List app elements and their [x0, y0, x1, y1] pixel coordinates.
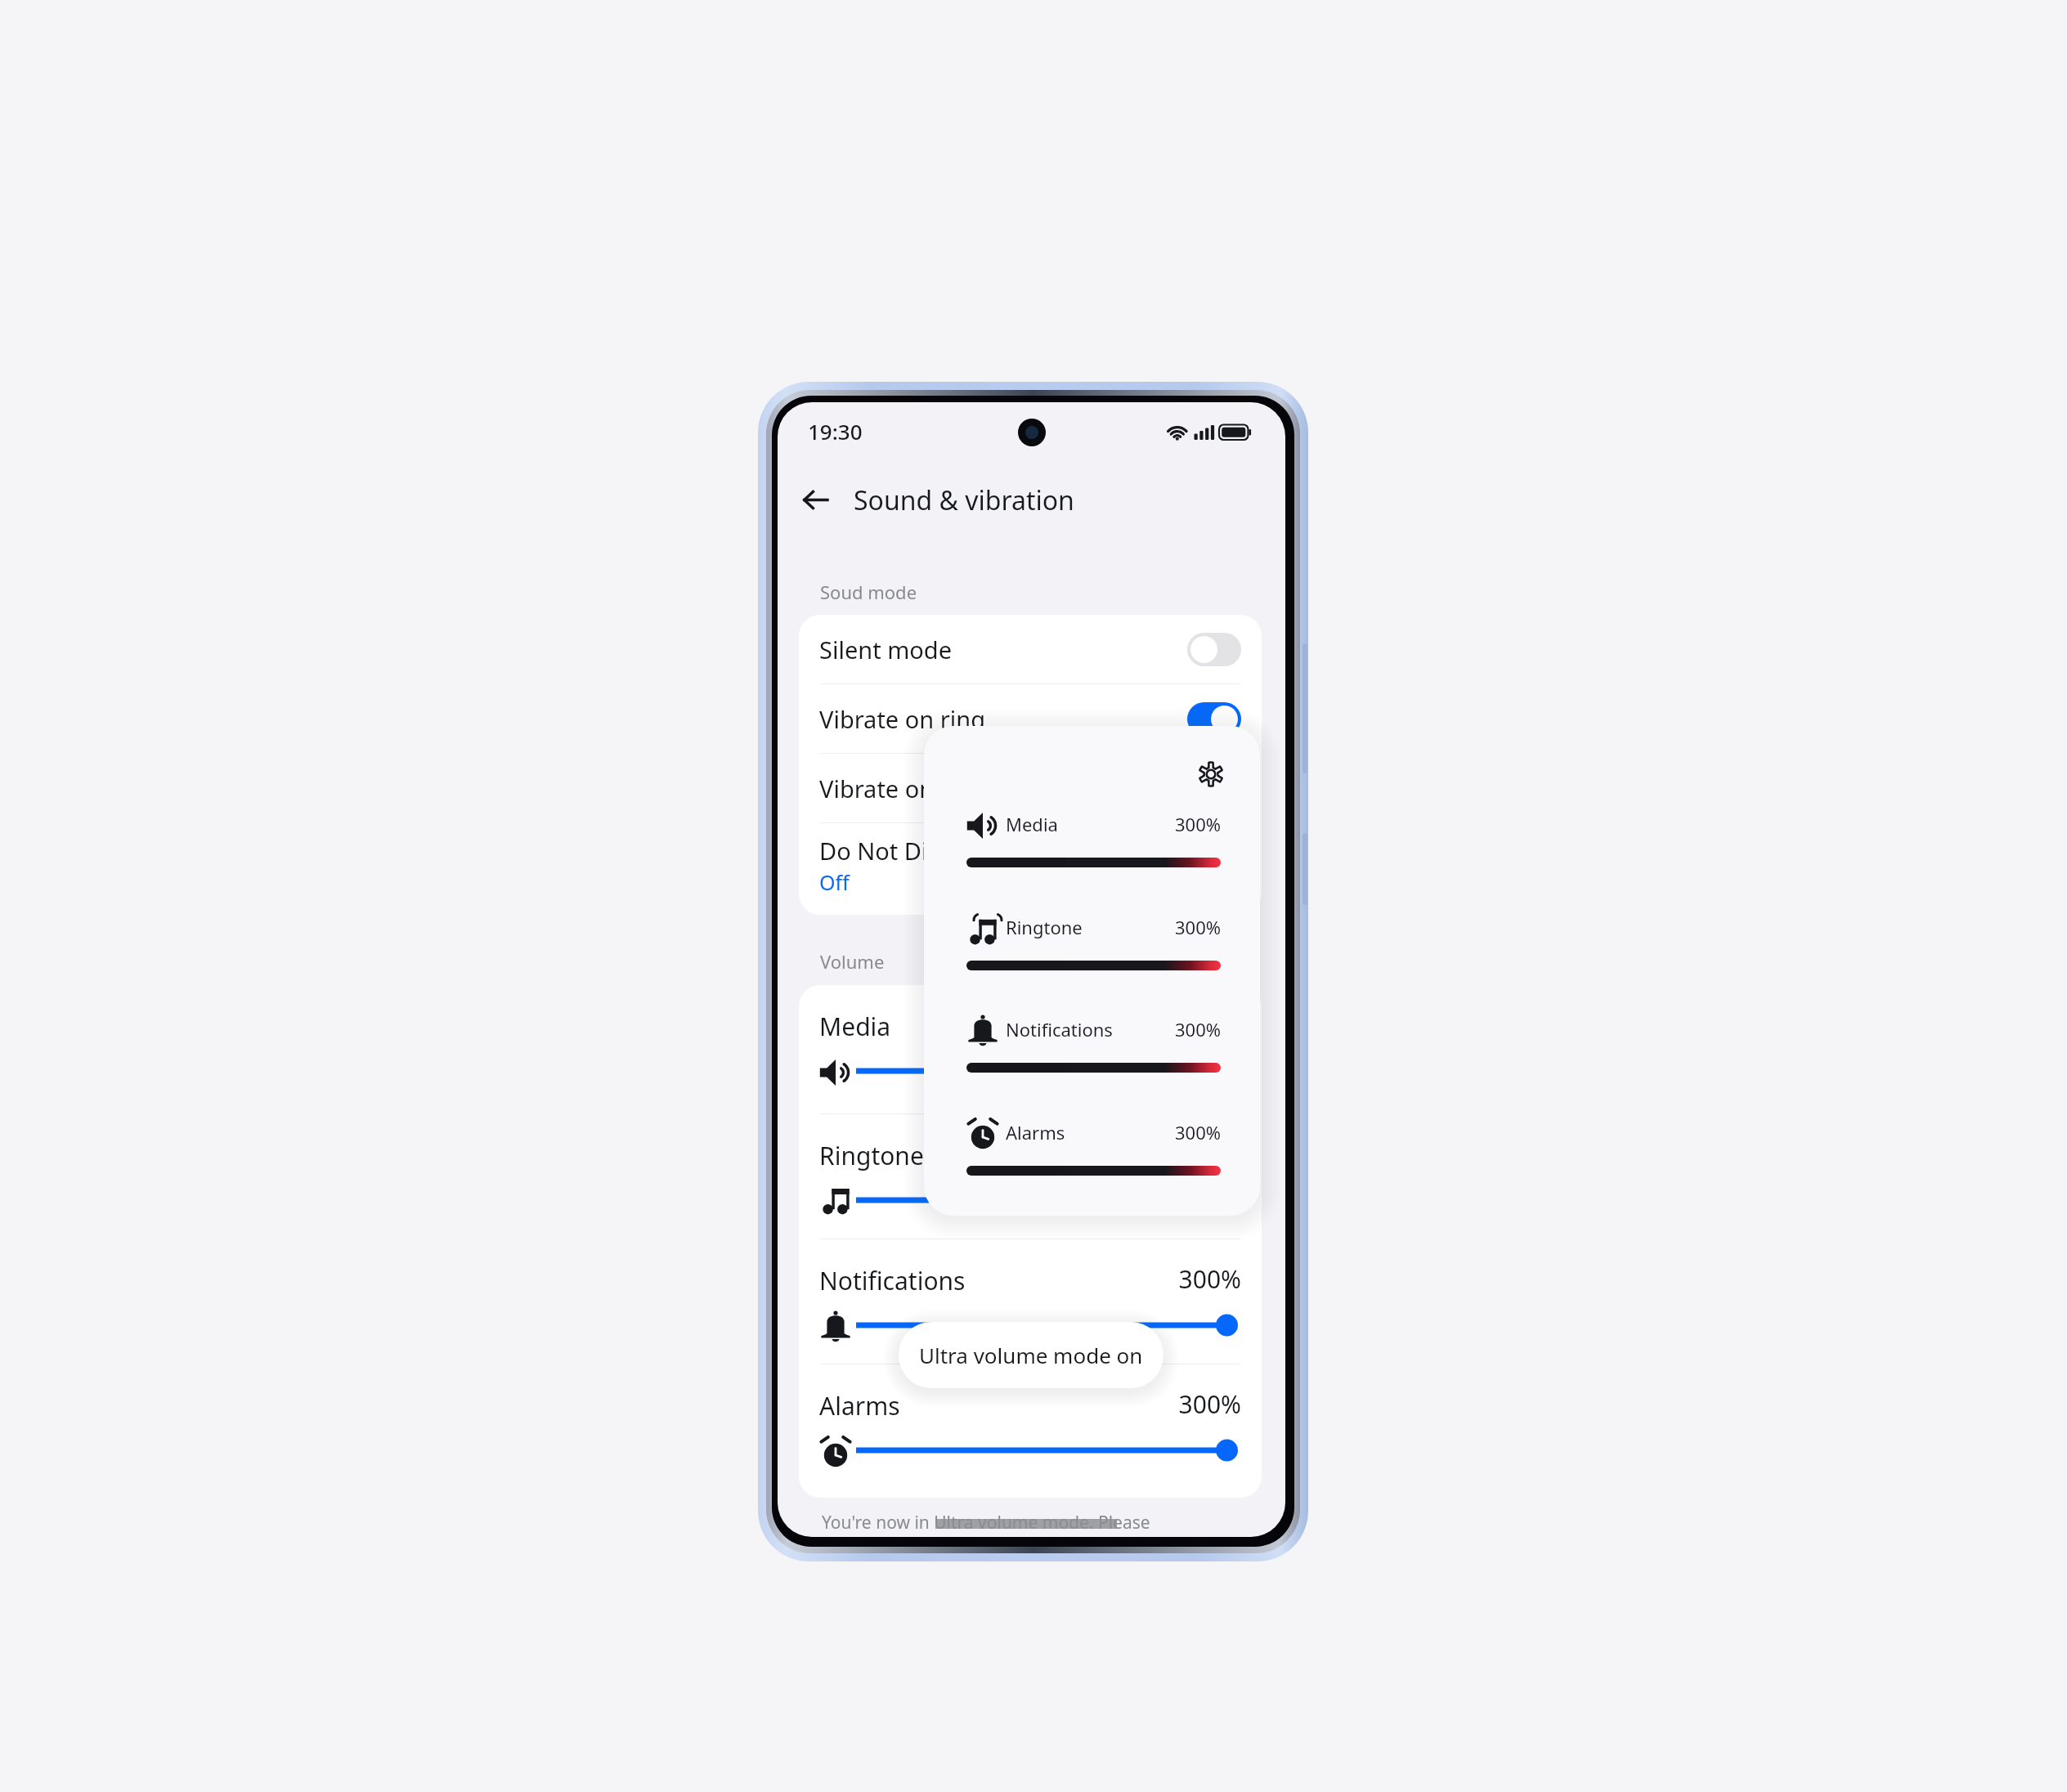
staticText: Ultra volume mode on: [919, 1341, 1143, 1369]
button[interactable]: Vibrate on ring: [799, 684, 1262, 753]
staticText: Vibrate on ring: [819, 703, 1187, 735]
staticText: Ringtone: [819, 1139, 924, 1172]
button[interactable]: Notifications volume: [948, 1001, 1239, 1083]
staticText: You're now in Ultra volume mode. Please: [822, 1511, 1150, 1534]
staticText: Alarms: [819, 1389, 900, 1422]
staticText: Off: [819, 868, 850, 896]
staticText: Ringtone: [1006, 915, 1083, 939]
button[interactable]: Do Not Disturb: [799, 823, 1262, 915]
staticText: 300%: [1104, 1120, 1221, 1145]
button[interactable]: Ringtone: [799, 1114, 1262, 1239]
staticText: Soud mode: [820, 580, 917, 604]
button[interactable]: Silent mode off: [1187, 633, 1241, 666]
staticText: Notifications: [1006, 1017, 1113, 1042]
button[interactable]: Vibrate on notification: [799, 754, 1262, 822]
button[interactable]: Media: [799, 985, 1262, 1113]
button[interactable]: Notifications: [799, 1239, 1262, 1364]
staticText: 300%: [1106, 1387, 1241, 1421]
staticText: 300%: [1106, 1137, 1241, 1171]
staticText: 300%: [1104, 915, 1221, 939]
staticText: Media: [1006, 812, 1058, 836]
button[interactable]: Back: [792, 477, 838, 522]
staticText: Vibrate on notification: [819, 773, 1187, 804]
staticText: Media: [819, 1010, 891, 1043]
staticText: Notifications: [819, 1264, 966, 1297]
button[interactable]: Vibrate on ring on: [1187, 702, 1241, 736]
button[interactable]: Vibrate on notification on: [1187, 772, 1241, 805]
button[interactable]: Alarms volume: [948, 1104, 1239, 1186]
button[interactable]: Media volume: [948, 796, 1239, 878]
staticText: Sound & vibration: [854, 482, 1074, 518]
staticText: 19:30: [808, 417, 863, 446]
staticText: 300%: [1104, 1017, 1221, 1042]
staticText: Silent mode: [819, 634, 1187, 665]
button[interactable]: Sound settings: [1188, 751, 1234, 797]
staticText: Alarms: [1006, 1120, 1065, 1145]
staticText: Volume: [820, 949, 885, 974]
staticText: 300%: [1106, 1008, 1241, 1042]
button[interactable]: Ringtone volume: [948, 899, 1239, 981]
staticText: 300%: [1106, 1262, 1241, 1296]
staticText: 300%: [1104, 812, 1221, 836]
button[interactable]: Alarms: [799, 1364, 1262, 1498]
staticText: Do Not Disturb: [819, 835, 987, 867]
button[interactable]: Silent mode: [799, 615, 1262, 683]
